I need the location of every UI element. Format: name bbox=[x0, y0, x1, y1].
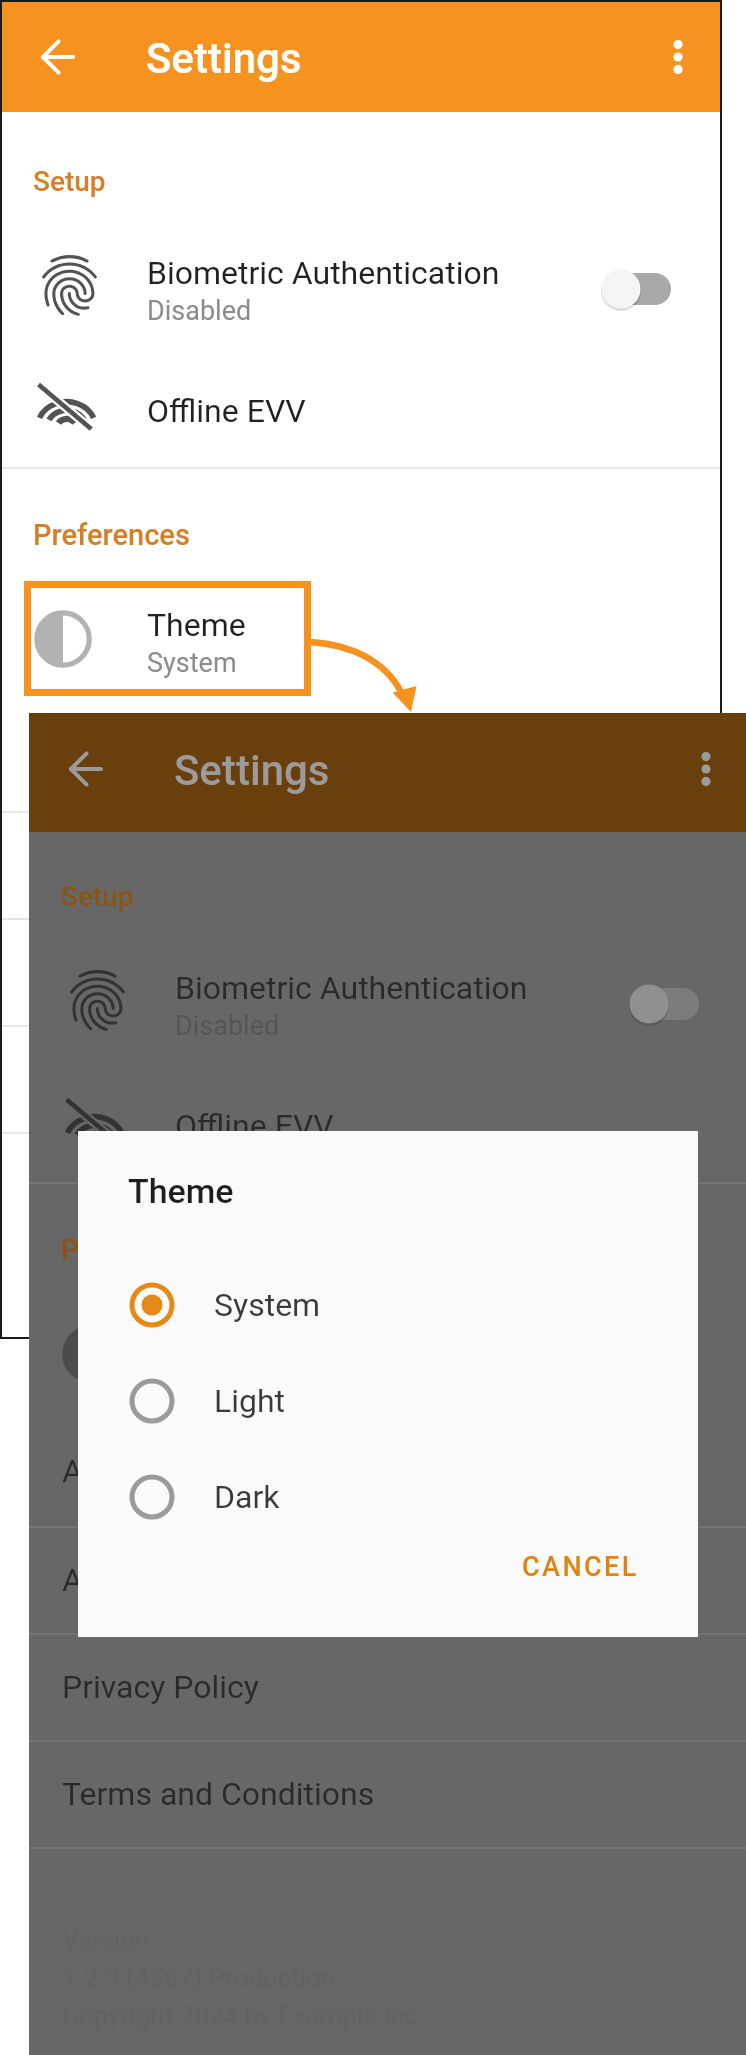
button[interactable]: Accessibility bbox=[1, 704, 721, 811]
staticText: Preferences bbox=[33, 518, 190, 552]
staticText: Setup bbox=[61, 880, 134, 913]
staticText: Disabled bbox=[147, 295, 252, 327]
button[interactable]: Privacy Policy bbox=[29, 1635, 746, 1742]
staticText: 1.2.3 (4567) Production bbox=[34, 1248, 308, 1278]
button[interactable]: Biometric Authentication toggle bbox=[597, 269, 685, 309]
staticText: Biometric Authentication bbox=[147, 254, 500, 292]
button[interactable]: CANCEL bbox=[508, 1535, 668, 1597]
staticText: Settings bbox=[174, 746, 330, 795]
button[interactable]: Back bbox=[52, 735, 120, 803]
staticText: Biometric Authentication bbox=[175, 969, 528, 1007]
staticText: System bbox=[214, 1286, 321, 1324]
button[interactable]: Biometric Authentication bbox=[29, 942, 746, 1066]
button[interactable]: Biometric Authentication toggle bbox=[625, 984, 713, 1024]
button[interactable]: More options bbox=[644, 23, 712, 91]
button[interactable]: Theme bbox=[29, 1297, 746, 1415]
staticText: Terms and Conditions bbox=[62, 1775, 375, 1813]
button[interactable]: About bbox=[29, 1528, 746, 1635]
staticText: System bbox=[175, 1362, 265, 1394]
staticText: Offline EVV bbox=[147, 392, 306, 430]
staticText: Version bbox=[34, 1210, 122, 1240]
staticText: Light bbox=[214, 1382, 286, 1420]
button[interactable]: Accessibility bbox=[29, 1419, 746, 1526]
staticText: Setup bbox=[33, 165, 106, 198]
staticText: Accessibility bbox=[62, 1452, 242, 1490]
staticText: Offline EVV bbox=[175, 1107, 334, 1145]
staticText: Dark bbox=[214, 1478, 280, 1516]
staticText: Theme bbox=[175, 1321, 274, 1359]
staticText: Privacy Policy bbox=[34, 953, 231, 991]
staticText: Theme bbox=[147, 606, 246, 644]
button[interactable]: Offline EVV bbox=[29, 1073, 746, 1183]
staticText: Preferences bbox=[61, 1233, 218, 1267]
staticText: Theme bbox=[128, 1171, 234, 1211]
button[interactable]: More options bbox=[672, 735, 740, 803]
staticText: Accessibility bbox=[34, 737, 214, 775]
staticText: About bbox=[62, 1561, 148, 1599]
button[interactable]: Biometric Authentication bbox=[1, 227, 721, 351]
staticText: Copyright 2024 by Example Inc. bbox=[34, 1286, 398, 1316]
staticText: Disabled bbox=[175, 1010, 280, 1042]
button[interactable]: Dark bbox=[78, 1449, 698, 1545]
button[interactable]: System bbox=[78, 1257, 698, 1353]
staticText: System bbox=[147, 647, 237, 679]
button[interactable]: Light bbox=[78, 1353, 698, 1449]
button[interactable]: Offline EVV bbox=[1, 358, 721, 468]
button[interactable]: Theme bbox=[1, 582, 721, 700]
button[interactable]: Terms and Conditions bbox=[29, 1742, 746, 1849]
button[interactable]: About bbox=[1, 813, 721, 920]
button[interactable]: Back bbox=[24, 23, 92, 91]
staticText: Privacy Policy bbox=[62, 1668, 259, 1706]
button[interactable]: Terms and Conditions bbox=[1, 1027, 721, 1134]
button[interactable]: Privacy Policy bbox=[1, 920, 721, 1027]
staticText: CANCEL bbox=[522, 1551, 639, 1583]
staticText: Settings bbox=[146, 34, 302, 83]
